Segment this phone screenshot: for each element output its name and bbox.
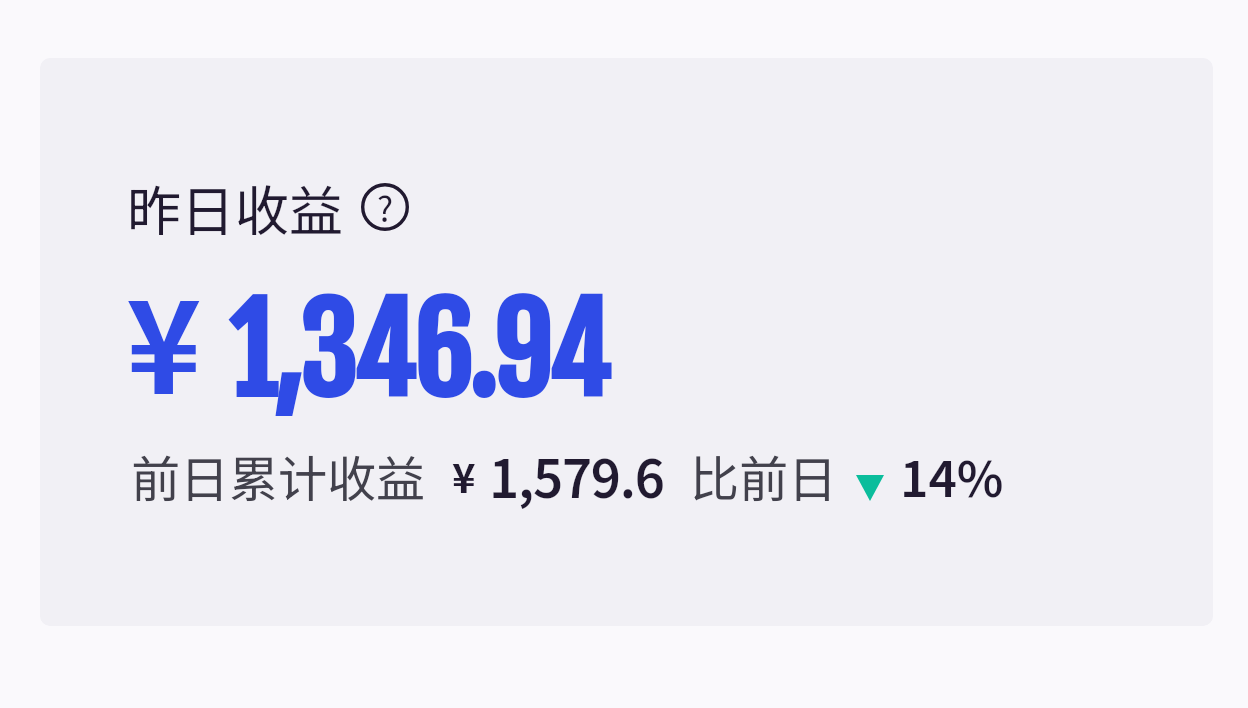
staticText: ? — [377, 183, 394, 231]
staticText: 1,346.94 — [228, 279, 608, 426]
staticText: 比前日 — [690, 440, 838, 511]
staticText: 14% — [900, 440, 1004, 511]
staticText: ¥ — [126, 246, 202, 431]
staticText: 前日累计收益 — [131, 440, 426, 511]
button[interactable]: What is yesterday's earnings? — [361, 183, 409, 231]
other: Down — [856, 475, 884, 501]
staticText: 昨日收益 — [127, 168, 343, 246]
staticText: 1,579.6 — [489, 438, 664, 513]
button[interactable]: 昨日收益 — [40, 58, 1213, 626]
staticText: ¥ — [452, 447, 476, 505]
